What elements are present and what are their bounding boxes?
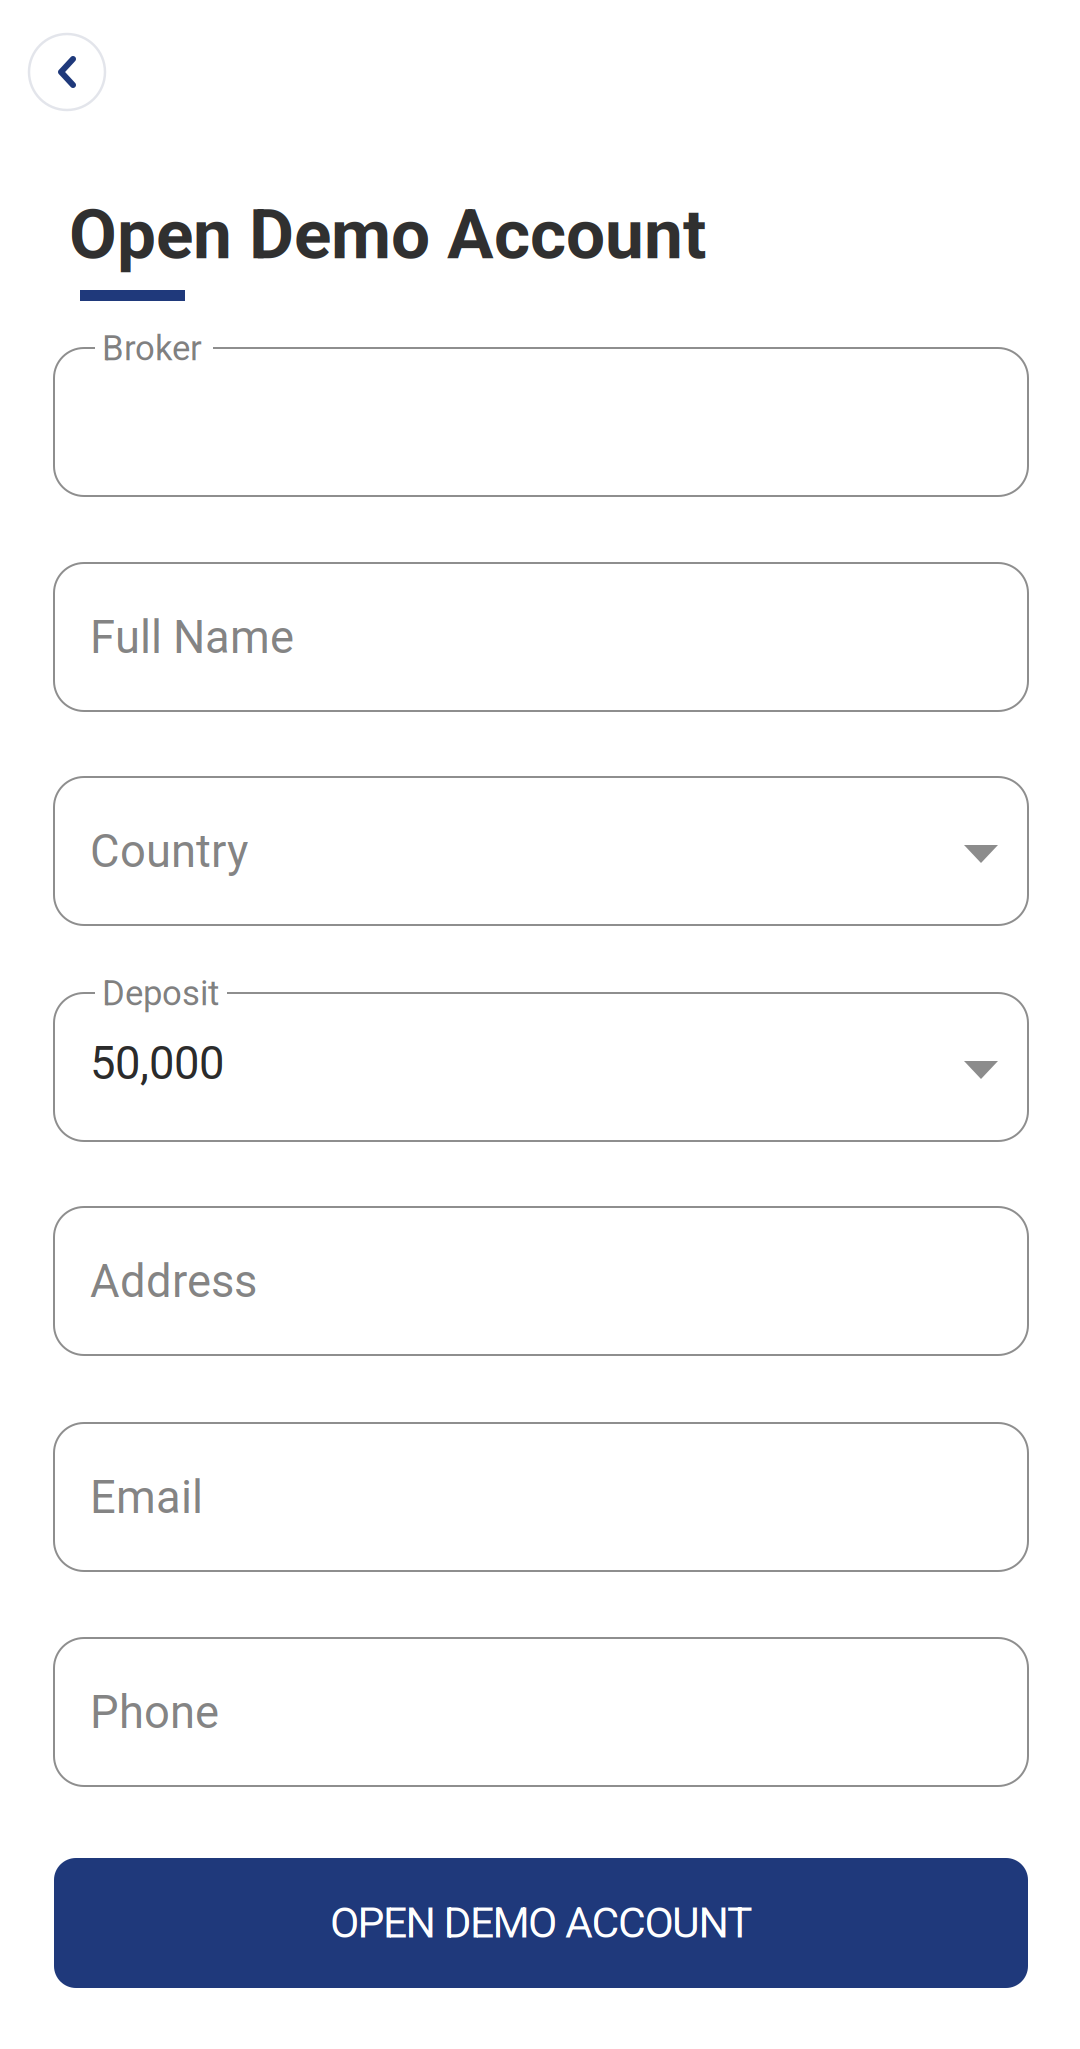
staticText: Deposit	[102, 973, 219, 1014]
button[interactable]: Back	[29, 34, 105, 110]
staticText: Email	[90, 1471, 203, 1524]
button[interactable]: Address	[54, 1207, 1028, 1355]
button[interactable]: Country	[54, 777, 1028, 925]
button[interactable]: Phone	[54, 1638, 1028, 1786]
button[interactable]: Full Name	[54, 563, 1028, 711]
button[interactable]: Email	[54, 1423, 1028, 1571]
staticText: Broker	[102, 328, 202, 369]
staticText: Phone	[90, 1686, 219, 1739]
staticText: Country	[90, 825, 248, 878]
button[interactable]: Broker	[54, 348, 1028, 496]
button[interactable]: Deposit	[54, 993, 1028, 1141]
staticText: 50,000	[90, 1037, 224, 1090]
staticText: Full Name	[90, 611, 294, 664]
button[interactable]: OPEN DEMO ACCOUNT	[54, 1858, 1028, 1988]
staticText: Open Demo Account	[69, 194, 706, 275]
staticText: OPEN DEMO ACCOUNT	[330, 1898, 752, 1948]
staticText: Address	[90, 1255, 257, 1308]
